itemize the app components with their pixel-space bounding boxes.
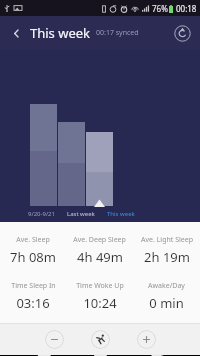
staticText: This week: [30, 24, 91, 42]
staticText: Time Sleep In: [11, 281, 56, 291]
button[interactable]: Ave. Sleep: [0, 235, 66, 266]
staticText: Ave. Light Sleep: [141, 235, 193, 245]
staticText: Last week: [67, 210, 95, 218]
button[interactable]: Time Woke Up: [66, 281, 133, 312]
staticText: Awake/Day: [148, 281, 185, 291]
button[interactable]: Back: [6, 23, 26, 43]
staticText: 0 min: [149, 294, 184, 312]
staticText: 03:16: [16, 294, 50, 312]
staticText: 76%: [152, 3, 168, 14]
staticText: Ave. Sleep: [16, 235, 50, 245]
button[interactable]: Last week: [65, 208, 97, 220]
staticText: 2h 19m: [144, 248, 190, 266]
button[interactable]: Awake/Day: [133, 281, 200, 312]
button[interactable]: This week: [105, 208, 137, 220]
staticText: 9/20-9/21: [28, 210, 55, 218]
staticText: 00:18: [176, 3, 197, 14]
staticText: 7h 08m: [10, 248, 56, 266]
button[interactable]: Activity: [91, 330, 110, 349]
staticText: 10:24: [83, 294, 117, 312]
button[interactable]: Decrease: [45, 330, 64, 349]
staticText: 4h 49m: [77, 248, 123, 266]
staticText: Ave. Deep Sleep: [73, 235, 126, 245]
button[interactable]: Sync: [172, 23, 192, 43]
staticText: This week: [107, 210, 135, 218]
staticText: 00:17 synced: [96, 28, 139, 38]
button[interactable]: Recents: [144, 355, 170, 356]
button[interactable]: Back: [31, 355, 57, 356]
button[interactable]: Increase: [137, 330, 156, 349]
button[interactable]: Time Sleep In: [0, 281, 66, 312]
button[interactable]: 9/20-9/21: [26, 208, 57, 220]
button[interactable]: Ave. Deep Sleep: [66, 235, 133, 266]
button[interactable]: Ave. Light Sleep: [133, 235, 200, 266]
button[interactable]: Home: [87, 355, 113, 356]
staticText: Time Woke Up: [76, 281, 124, 291]
